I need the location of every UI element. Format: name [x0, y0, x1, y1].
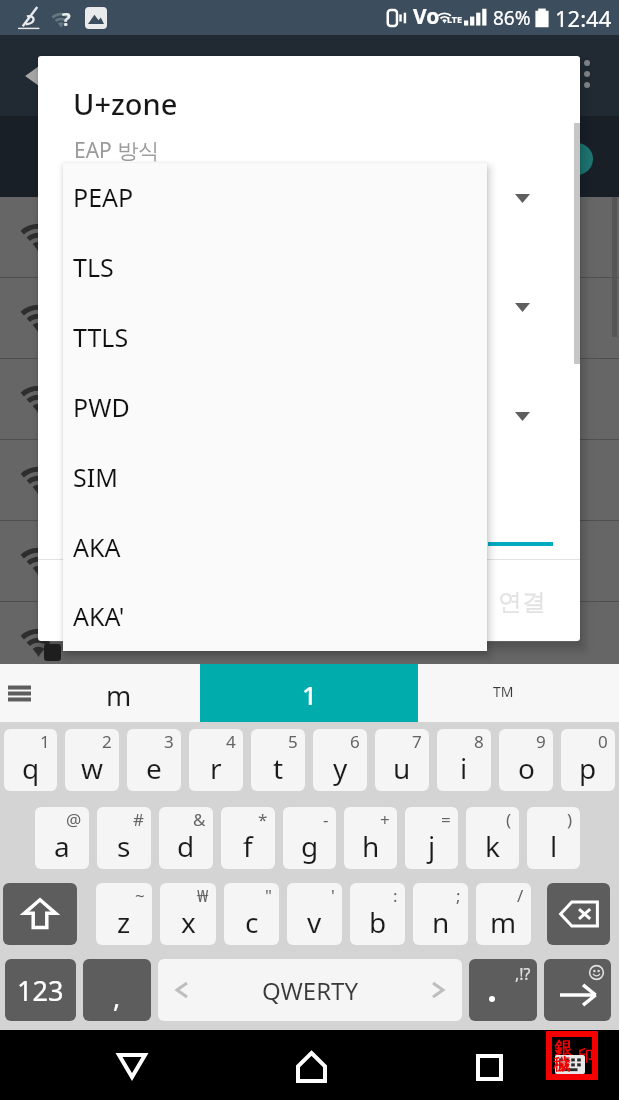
button[interactable]: ₩: [160, 883, 216, 945]
staticText: #: [133, 808, 144, 831]
staticText: j: [428, 827, 436, 865]
staticText: g: [301, 827, 319, 865]
button[interactable]: #: [97, 807, 151, 869]
button[interactable]: 2: [65, 729, 119, 791]
button[interactable]: 4: [189, 729, 243, 791]
staticText: TM: [493, 682, 514, 701]
button[interactable]: :: [350, 883, 405, 945]
staticText: s: [117, 827, 131, 865]
staticText: SIM: [73, 460, 118, 494]
button[interactable]: 0: [561, 729, 615, 791]
staticText: p: [579, 749, 597, 787]
button[interactable]: 123: [5, 959, 76, 1021]
button[interactable]: SIM: [63, 442, 487, 512]
staticText: 9: [536, 730, 546, 753]
button[interactable]: Enter: [544, 959, 611, 1021]
staticText: t: [273, 749, 284, 787]
staticText: o: [518, 749, 535, 787]
button[interactable]: Home: [287, 1043, 335, 1091]
staticText: n: [432, 903, 450, 941]
staticText: ,!?: [515, 963, 531, 985]
staticText: -: [323, 808, 329, 831]
button[interactable]: TLS: [63, 232, 487, 302]
staticText: LTE: [447, 13, 463, 25]
button[interactable]: 6: [313, 729, 367, 791]
button[interactable]: ,: [83, 959, 151, 1021]
button[interactable]: ,!?: [469, 959, 537, 1021]
staticText: @: [66, 808, 82, 831]
staticText: 2: [102, 730, 112, 753]
button[interactable]: AKA: [63, 512, 487, 582]
button[interactable]: Backspace: [547, 883, 610, 945]
button[interactable]: TM: [418, 664, 619, 722]
staticText: q: [22, 749, 40, 787]
button[interactable]: Add network: [561, 143, 593, 175]
button[interactable]: ": [224, 883, 279, 945]
button[interactable]: (: [466, 807, 519, 869]
staticText: ): [567, 808, 573, 831]
button[interactable]: QWERTY: [158, 959, 462, 1021]
button[interactable]: /: [476, 883, 531, 945]
button[interactable]: ): [527, 807, 580, 869]
button[interactable]: +: [344, 807, 397, 869]
button[interactable]: ;: [413, 883, 468, 945]
button[interactable]: AKA': [63, 582, 487, 650]
button[interactable]: Switch input method: [549, 1034, 595, 1077]
staticText: TTLS: [73, 320, 129, 354]
button[interactable]: &: [159, 807, 213, 869]
button[interactable]: 9: [499, 729, 553, 791]
staticText: /: [517, 884, 524, 907]
staticText: 0: [598, 730, 608, 753]
staticText: k: [485, 827, 500, 865]
button[interactable]: TTLS: [63, 302, 487, 372]
button[interactable]: m: [0, 664, 200, 722]
staticText: TLS: [73, 250, 114, 284]
button[interactable]: Back: [14, 54, 58, 98]
staticText: x: [181, 903, 196, 941]
button[interactable]: ~: [96, 883, 152, 945]
staticText: l: [550, 827, 558, 865]
button[interactable]: PEAP: [63, 162, 487, 232]
button[interactable]: 8: [437, 729, 491, 791]
staticText: u: [393, 749, 411, 787]
button[interactable]: @: [35, 807, 89, 869]
button[interactable]: 3: [127, 729, 181, 791]
staticText: 8: [474, 730, 484, 753]
staticText: z: [117, 903, 131, 941]
staticText: a: [54, 827, 70, 865]
staticText: AKA: [73, 530, 121, 564]
button[interactable]: Shift: [3, 883, 77, 945]
staticText: m: [490, 903, 517, 941]
staticText: e: [146, 749, 162, 787]
button[interactable]: ': [287, 883, 342, 945]
staticText: AKA': [73, 599, 125, 633]
staticText: 1: [302, 677, 317, 712]
staticText: EAP 방식: [74, 136, 160, 165]
staticText: f: [243, 827, 253, 865]
staticText: 7: [412, 730, 422, 753]
button[interactable]: More options: [578, 59, 596, 88]
button[interactable]: 5: [251, 729, 305, 791]
staticText: :: [393, 884, 398, 907]
button[interactable]: Recents: [465, 1043, 513, 1091]
button[interactable]: =: [405, 807, 458, 869]
staticText: m: [106, 677, 132, 714]
button[interactable]: -: [283, 807, 336, 869]
staticText: 3: [164, 730, 174, 753]
button[interactable]: 1: [4, 729, 57, 791]
staticText: r: [210, 749, 222, 787]
staticText: c: [245, 903, 259, 941]
button[interactable]: 7: [375, 729, 429, 791]
staticText: ~: [135, 884, 145, 907]
staticText: 86%: [493, 5, 531, 31]
button[interactable]: *: [221, 807, 275, 869]
staticText: 12:44: [555, 3, 612, 33]
staticText: &: [193, 808, 206, 831]
button[interactable]: 1: [200, 664, 418, 722]
staticText: y: [333, 749, 348, 787]
button[interactable]: 연결: [468, 568, 580, 641]
button[interactable]: Back: [108, 1042, 156, 1090]
staticText: h: [362, 827, 380, 865]
staticText: d: [177, 827, 195, 865]
button[interactable]: PWD: [63, 372, 487, 442]
